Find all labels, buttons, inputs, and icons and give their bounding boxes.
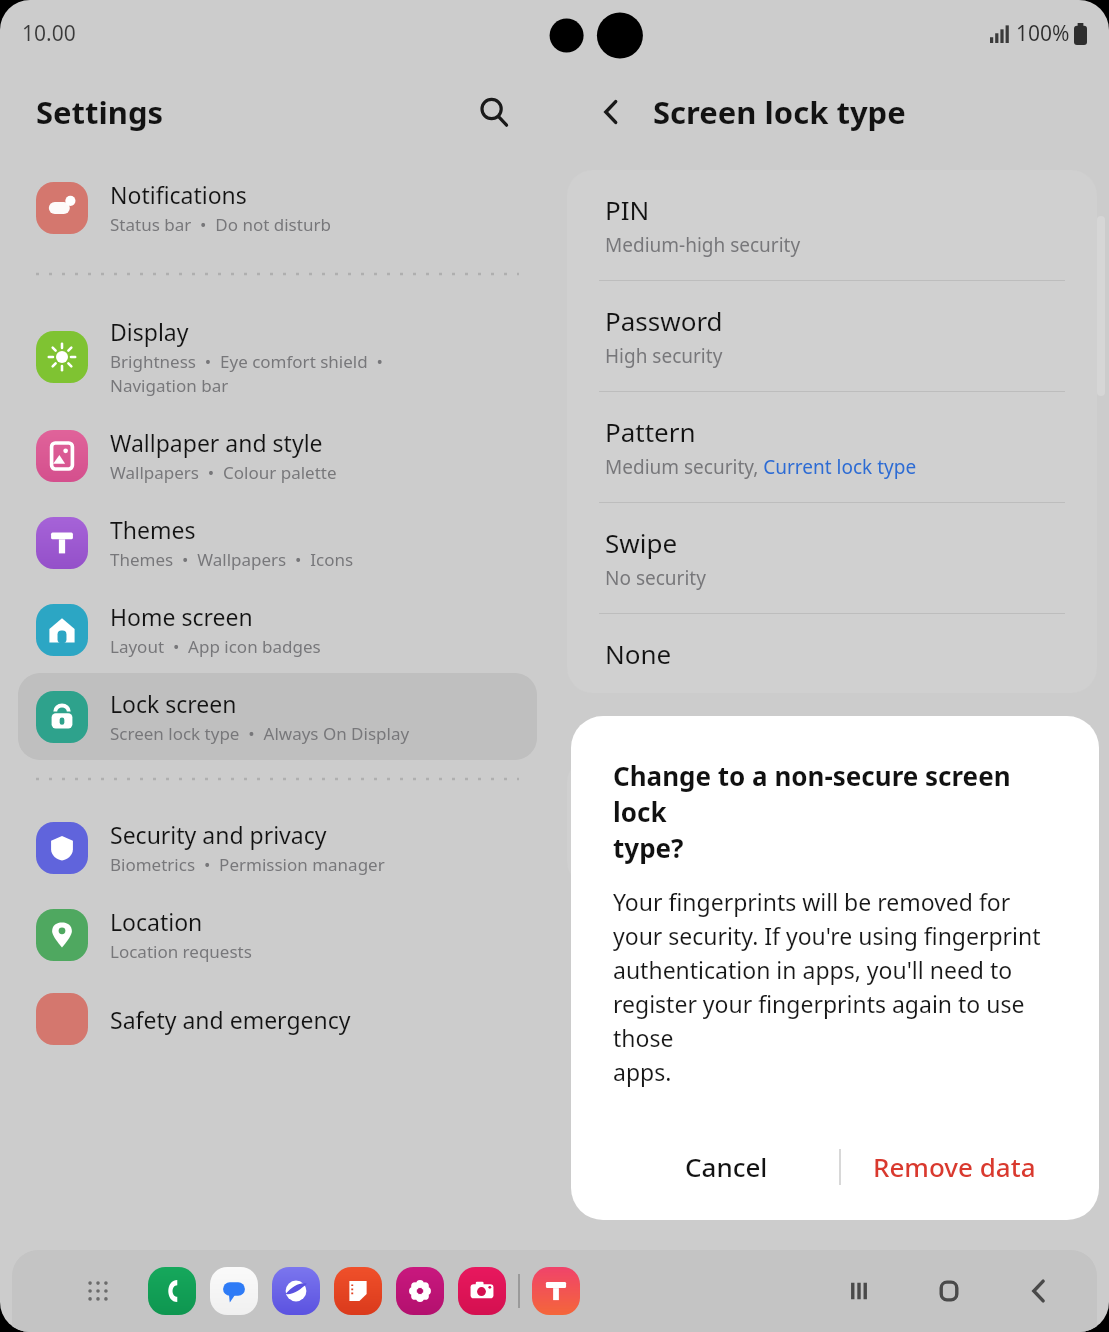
button[interactable]: Themes bbox=[532, 1267, 580, 1315]
button[interactable]: None bbox=[567, 614, 1097, 693]
button[interactable]: Swipe bbox=[567, 503, 1097, 613]
button[interactable]: Internet bbox=[272, 1267, 320, 1315]
staticText: Layout • App icon badges bbox=[110, 635, 321, 658]
button[interactable]: Remove data bbox=[841, 1133, 1067, 1200]
button[interactable]: Cancel bbox=[613, 1133, 839, 1200]
button[interactable]: Face toggle bbox=[1003, 783, 1069, 817]
staticText: 100% bbox=[1016, 19, 1070, 48]
staticText: Wallpaper and style bbox=[110, 427, 323, 458]
staticText: Screen lock type • Always On Display bbox=[110, 722, 410, 745]
button[interactable]: Home screen bbox=[18, 586, 537, 673]
staticText: Themes bbox=[110, 514, 196, 545]
staticText: No security bbox=[605, 565, 706, 591]
staticText: Lock screen bbox=[110, 688, 237, 719]
button[interactable]: Recents bbox=[831, 1263, 887, 1319]
button[interactable]: Pattern bbox=[567, 392, 1097, 502]
staticText: 10.00 bbox=[22, 19, 76, 48]
staticText: Home screen bbox=[110, 601, 253, 632]
staticText: Screen lock type bbox=[653, 91, 906, 133]
staticText: Medium-high security bbox=[605, 232, 801, 258]
staticText: None bbox=[605, 636, 672, 671]
button[interactable]: Phone bbox=[148, 1267, 196, 1315]
staticText: Location requests bbox=[110, 940, 252, 963]
staticText: Swipe bbox=[605, 525, 678, 560]
staticText: Biometrics • Permission manager bbox=[110, 853, 385, 876]
staticText: PIN bbox=[605, 192, 650, 227]
button[interactable]: Navigate up bbox=[587, 88, 635, 136]
staticText: Security and privacy bbox=[110, 819, 327, 850]
staticText: Biometrics bbox=[595, 715, 693, 741]
staticText: Remove data bbox=[873, 1149, 1036, 1184]
staticText: Pattern bbox=[605, 414, 696, 449]
staticText: Location bbox=[110, 906, 203, 937]
staticText: Password bbox=[605, 303, 723, 338]
staticText: Notifications bbox=[110, 179, 247, 210]
button[interactable]: Lock screen bbox=[18, 673, 537, 760]
staticText: Display bbox=[110, 316, 189, 347]
staticText: Wallpapers • Colour palette bbox=[110, 461, 337, 484]
staticText: Your fingerprints will be removed for yo… bbox=[613, 886, 1067, 1087]
button[interactable]: Display bbox=[18, 301, 537, 412]
button[interactable]: Location bbox=[18, 891, 537, 978]
staticText: Safety and emergency bbox=[110, 1004, 351, 1035]
staticText: Face bbox=[595, 783, 646, 816]
staticText: Change to a non-secure screen lock type? bbox=[613, 758, 1067, 866]
staticText: Themes • Wallpapers • Icons bbox=[110, 548, 354, 571]
button[interactable]: PIN bbox=[567, 170, 1097, 280]
staticText: Status bar • Do not disturb bbox=[110, 213, 331, 236]
staticText: Settings bbox=[36, 91, 164, 133]
button[interactable]: Password bbox=[567, 281, 1097, 391]
button[interactable]: Camera bbox=[458, 1267, 506, 1315]
button[interactable]: Themes bbox=[18, 499, 537, 586]
button[interactable]: Wallpaper and style bbox=[18, 412, 537, 499]
button[interactable]: Samsung Notes bbox=[334, 1267, 382, 1315]
button[interactable]: Apps bbox=[74, 1267, 122, 1315]
staticText: Cancel bbox=[685, 1149, 768, 1184]
staticText: Brightness • Eye comfort shield • Naviga… bbox=[110, 350, 383, 397]
button[interactable]: Messages bbox=[210, 1267, 258, 1315]
button[interactable]: Gallery bbox=[396, 1267, 444, 1315]
staticText: Medium security, Current lock type bbox=[605, 454, 917, 480]
button[interactable]: Home bbox=[921, 1263, 977, 1319]
button[interactable]: Security and privacy bbox=[18, 804, 537, 891]
button[interactable]: Search bbox=[469, 87, 519, 137]
button[interactable]: Notifications bbox=[18, 164, 537, 251]
button[interactable]: Back bbox=[1011, 1263, 1067, 1319]
staticText: High security bbox=[605, 343, 723, 369]
